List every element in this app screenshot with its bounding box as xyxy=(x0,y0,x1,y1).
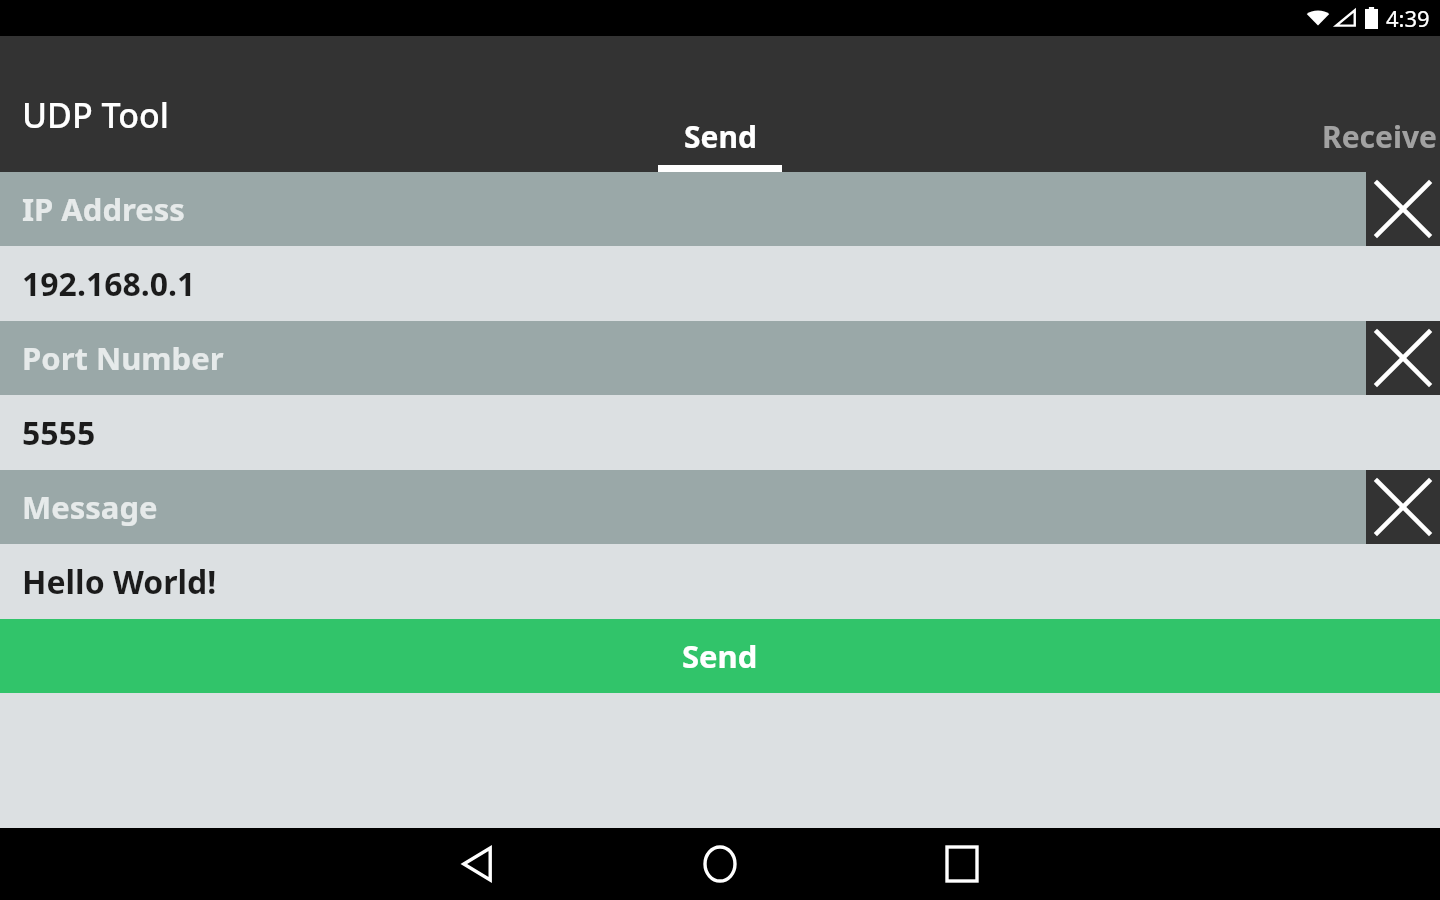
button[interactable]: Home xyxy=(672,828,768,900)
button[interactable]: 192.168.0.1 xyxy=(0,246,1440,321)
staticText: UDP Tool xyxy=(22,92,169,138)
button[interactable]: 5555 xyxy=(0,395,1440,470)
button[interactable]: Send xyxy=(568,100,872,172)
staticText: Port Number xyxy=(22,337,224,379)
staticText: Hello World! xyxy=(22,560,217,604)
button[interactable]: Clear Port Number xyxy=(1366,321,1440,395)
button[interactable]: Hello World! xyxy=(0,544,1440,619)
button[interactable]: Clear IP Address xyxy=(1366,172,1440,246)
button[interactable]: Message xyxy=(0,470,1366,544)
staticText: 5555 xyxy=(22,411,96,455)
button[interactable]: Port Number xyxy=(0,321,1366,395)
button[interactable]: Receive xyxy=(1322,100,1440,172)
staticText: IP Address xyxy=(22,188,185,230)
button[interactable]: Clear Message xyxy=(1366,470,1440,544)
staticText: 4:39 xyxy=(1386,3,1430,33)
staticText: Receive xyxy=(1322,116,1437,157)
staticText: Message xyxy=(22,486,158,528)
staticText: 192.168.0.1 xyxy=(22,262,196,306)
button[interactable]: Recent apps xyxy=(914,828,1010,900)
staticText: Send xyxy=(684,116,757,157)
button[interactable]: Send xyxy=(0,619,1440,693)
staticText: Send xyxy=(682,635,758,677)
button[interactable]: IP Address xyxy=(0,172,1366,246)
button[interactable]: Back xyxy=(429,828,525,900)
